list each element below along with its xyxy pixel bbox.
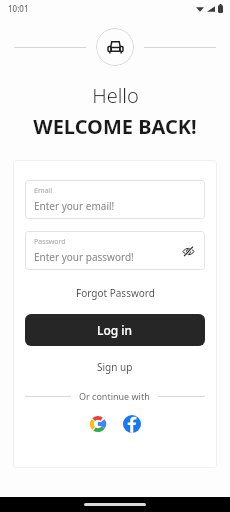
staticText: Or continue with	[79, 390, 150, 402]
staticText: Log in	[97, 322, 133, 338]
staticText: Password	[34, 237, 66, 247]
staticText: WELCOME BACK!	[33, 113, 197, 140]
staticText: Email	[34, 186, 52, 196]
button[interactable]: Forgot Password	[70, 284, 161, 302]
button[interactable]: Email	[25, 180, 205, 219]
staticText: Enter your password!	[34, 250, 134, 264]
button[interactable]: Continue with Google	[88, 414, 108, 434]
button[interactable]: App logo	[96, 28, 134, 66]
button[interactable]: Continue with Facebook	[122, 414, 142, 434]
staticText: Hello	[92, 82, 139, 109]
staticText: Sign up	[97, 360, 133, 374]
button[interactable]: Sign up	[91, 358, 139, 376]
button[interactable]: Show password	[180, 243, 196, 259]
staticText: Enter your email!	[34, 199, 115, 213]
staticText: 10:01	[8, 3, 29, 14]
button[interactable]: Log in	[25, 314, 205, 346]
button[interactable]: Password	[25, 231, 205, 270]
staticText: Forgot Password	[76, 286, 155, 300]
